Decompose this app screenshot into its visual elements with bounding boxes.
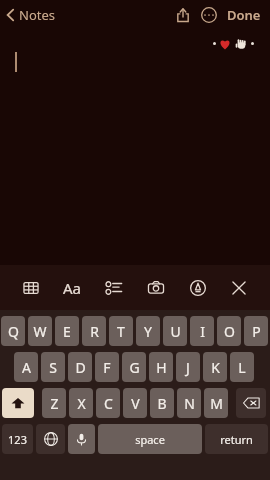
staticText: 123 (8, 432, 27, 447)
button[interactable]: space (98, 424, 202, 454)
button[interactable]: B (150, 388, 174, 418)
staticText: space (135, 432, 165, 447)
staticText: D (75, 358, 86, 377)
staticText: K (211, 358, 220, 377)
button[interactable]: S (41, 352, 65, 382)
staticText: Done (227, 6, 261, 24)
button[interactable]: Y (136, 316, 160, 346)
staticText: S (49, 358, 57, 377)
button[interactable]: Share (170, 2, 196, 28)
button[interactable]: Aa (57, 273, 87, 303)
button[interactable]: D (68, 352, 92, 382)
button[interactable]: Markup (183, 273, 213, 303)
button[interactable]: O (217, 316, 241, 346)
button[interactable]: More options (196, 2, 222, 28)
button[interactable]: P (244, 316, 268, 346)
staticText: R (90, 322, 99, 341)
button[interactable]: Checklist (99, 273, 129, 303)
button[interactable]: Done (222, 1, 266, 29)
staticText: return (220, 432, 253, 447)
staticText: G (129, 358, 140, 377)
staticText: J (186, 358, 190, 377)
button[interactable]: Close keyboard (224, 273, 254, 303)
button[interactable]: Backspace (236, 388, 266, 418)
button[interactable]: Dictation (68, 424, 95, 454)
staticText: A (22, 358, 31, 377)
button[interactable]: T (109, 316, 133, 346)
staticText: H (156, 358, 167, 377)
staticText: L (238, 358, 246, 377)
button[interactable]: Change keyboard (36, 424, 65, 454)
staticText: W (33, 322, 47, 341)
button[interactable]: Q (1, 316, 25, 346)
button[interactable]: R (82, 316, 106, 346)
button[interactable]: V (123, 388, 147, 418)
button[interactable]: M (204, 388, 228, 418)
button[interactable]: G (122, 352, 146, 382)
button[interactable]: A (14, 352, 38, 382)
staticText: Aa (63, 278, 82, 298)
button[interactable]: J (176, 352, 200, 382)
button[interactable]: 123 (2, 424, 33, 454)
button[interactable]: U (163, 316, 187, 346)
button[interactable]: X (69, 388, 93, 418)
staticText: Q (8, 322, 19, 341)
button[interactable]: Z (42, 388, 66, 418)
button[interactable]: Notes (0, 2, 63, 28)
staticText: B (157, 394, 167, 413)
button[interactable]: E (55, 316, 79, 346)
staticText: N (184, 394, 195, 413)
button[interactable]: Table (16, 273, 46, 303)
staticText: M (210, 394, 223, 413)
button[interactable]: Shift (2, 388, 34, 418)
staticText: T (117, 322, 125, 341)
button[interactable]: L (230, 352, 254, 382)
staticText: E (63, 322, 71, 341)
staticText: P (252, 322, 261, 341)
button[interactable]: return (205, 424, 268, 454)
button[interactable]: C (96, 388, 120, 418)
staticText: Notes (19, 6, 55, 24)
staticText: O (224, 322, 235, 341)
button[interactable]: W (28, 316, 52, 346)
button[interactable]: Camera (141, 273, 171, 303)
staticText: I (200, 322, 205, 341)
staticText: V (131, 394, 140, 413)
staticText: Y (144, 322, 152, 341)
staticText: F (103, 358, 111, 377)
staticText: C (104, 394, 113, 413)
button[interactable]: I (190, 316, 214, 346)
button[interactable]: F (95, 352, 119, 382)
staticText: U (170, 322, 181, 341)
button[interactable]: H (149, 352, 173, 382)
staticText: X (77, 394, 86, 413)
button[interactable]: K (203, 352, 227, 382)
button[interactable]: N (177, 388, 201, 418)
staticText: Z (50, 394, 59, 413)
